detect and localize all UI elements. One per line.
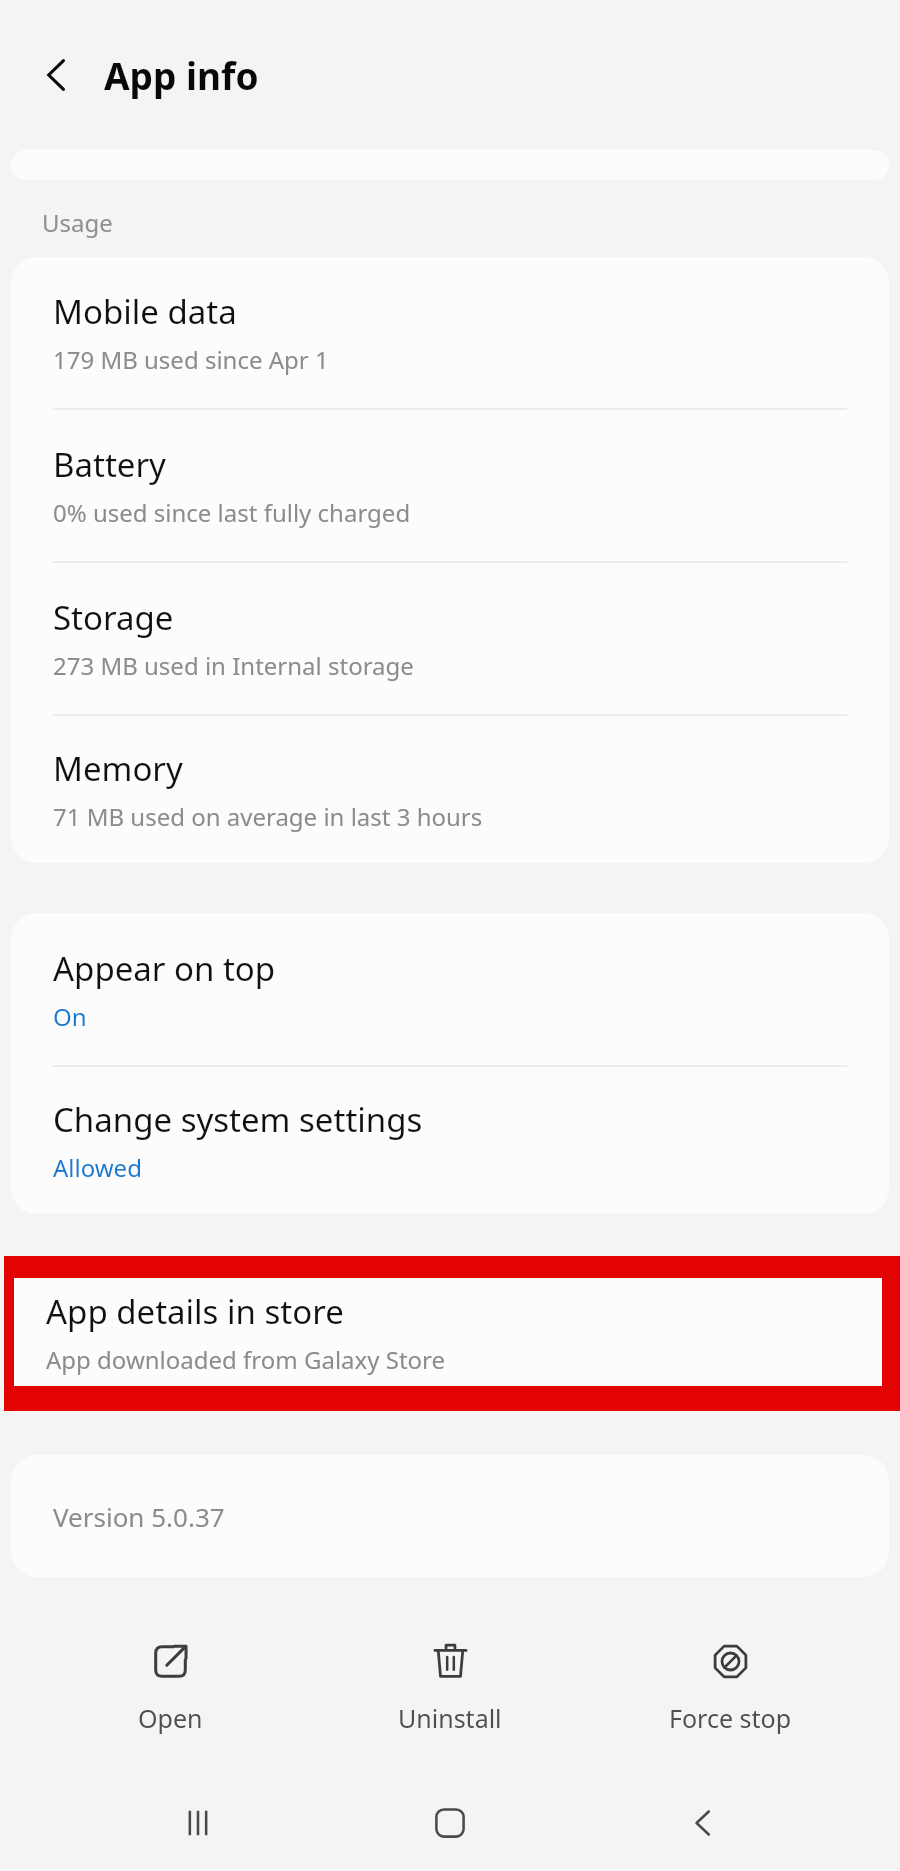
button[interactable]: Recents: [143, 1775, 253, 1871]
button[interactable]: Home: [395, 1775, 505, 1871]
staticText: Version 5.0.37: [53, 1499, 225, 1534]
button[interactable]: Version 5.0.37: [11, 1455, 889, 1577]
staticText: 0% used since last fully charged: [53, 496, 411, 529]
button[interactable]: Mobile data: [11, 257, 889, 408]
staticText: Storage: [53, 595, 174, 640]
staticText: Appear on top: [53, 946, 276, 991]
staticText: Change system settings: [53, 1097, 423, 1142]
button[interactable]: Force stop: [620, 1635, 840, 1741]
staticText: Uninstall: [398, 1701, 502, 1735]
staticText: On: [53, 1000, 87, 1033]
button[interactable]: Uninstall: [340, 1635, 560, 1741]
staticText: 273 MB used in Internal storage: [53, 649, 414, 682]
staticText: Usage: [42, 206, 113, 239]
staticText: 179 MB used since Apr 1: [53, 343, 329, 376]
button[interactable]: Open: [60, 1635, 280, 1741]
staticText: Mobile data: [53, 289, 237, 334]
staticText: 71 MB used on average in last 3 hours: [53, 800, 483, 833]
staticText: Battery: [53, 442, 166, 487]
button[interactable]: Change system settings: [11, 1067, 889, 1214]
button[interactable]: Appear on top: [11, 913, 889, 1065]
staticText: Open: [138, 1701, 203, 1735]
staticText: Memory: [53, 746, 183, 791]
button[interactable]: Back: [648, 1775, 758, 1871]
staticText: App downloaded from Galaxy Store: [46, 1343, 446, 1376]
staticText: Allowed: [53, 1151, 142, 1184]
staticText: App info: [104, 50, 259, 100]
button[interactable]: App details in store: [14, 1278, 882, 1386]
button[interactable]: Memory: [11, 716, 889, 863]
staticText: Force stop: [669, 1701, 792, 1735]
button[interactable]: Battery: [11, 410, 889, 561]
button[interactable]: Storage: [11, 563, 889, 714]
button[interactable]: Navigate up: [26, 44, 88, 106]
staticText: App details in store: [46, 1289, 344, 1334]
